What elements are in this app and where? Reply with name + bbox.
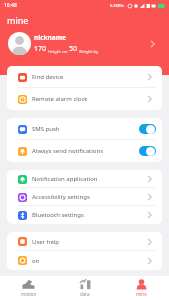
button[interactable]: Find device — [7, 66, 162, 88]
staticText: Notification application — [32, 175, 98, 183]
button[interactable]: Accessibility settings — [7, 188, 162, 206]
button[interactable]: Notification application — [7, 170, 162, 188]
button[interactable]: User help — [7, 232, 162, 251]
staticText: 16:48 — [4, 2, 17, 9]
staticText: motion — [21, 291, 37, 297]
staticText: SMS push — [32, 125, 60, 133]
button[interactable]: on — [7, 251, 162, 270]
button[interactable]: data — [57, 276, 113, 300]
button[interactable]: SMS push — [7, 118, 162, 140]
staticText: Bluetooth settings — [32, 211, 84, 219]
staticText: Weight kg — [78, 49, 98, 54]
button[interactable]: Bluetooth settings — [7, 206, 162, 224]
staticText: Always send notifications — [32, 147, 104, 155]
staticText: User help — [32, 238, 60, 246]
staticText: Accessibility settings — [32, 193, 90, 201]
staticText: Height cm — [47, 49, 69, 54]
staticText: nickname — [34, 33, 66, 42]
button[interactable]: motion — [0, 276, 57, 300]
staticText: mine — [136, 291, 147, 297]
staticText: 50 — [69, 44, 78, 54]
staticText: on — [32, 257, 40, 265]
staticText: Find device — [32, 73, 64, 81]
staticText: 170 — [34, 44, 47, 54]
staticText: mine — [7, 14, 29, 26]
staticText: Remote alarm clock — [32, 95, 88, 103]
button[interactable]: mine — [113, 276, 169, 300]
button[interactable]: Remote alarm clock — [7, 88, 162, 110]
button[interactable]: nickname — [8, 32, 155, 55]
staticText: data — [80, 291, 90, 297]
button[interactable]: Always send notifications — [7, 140, 162, 162]
staticText: 6.3KB/s — [110, 3, 125, 8]
